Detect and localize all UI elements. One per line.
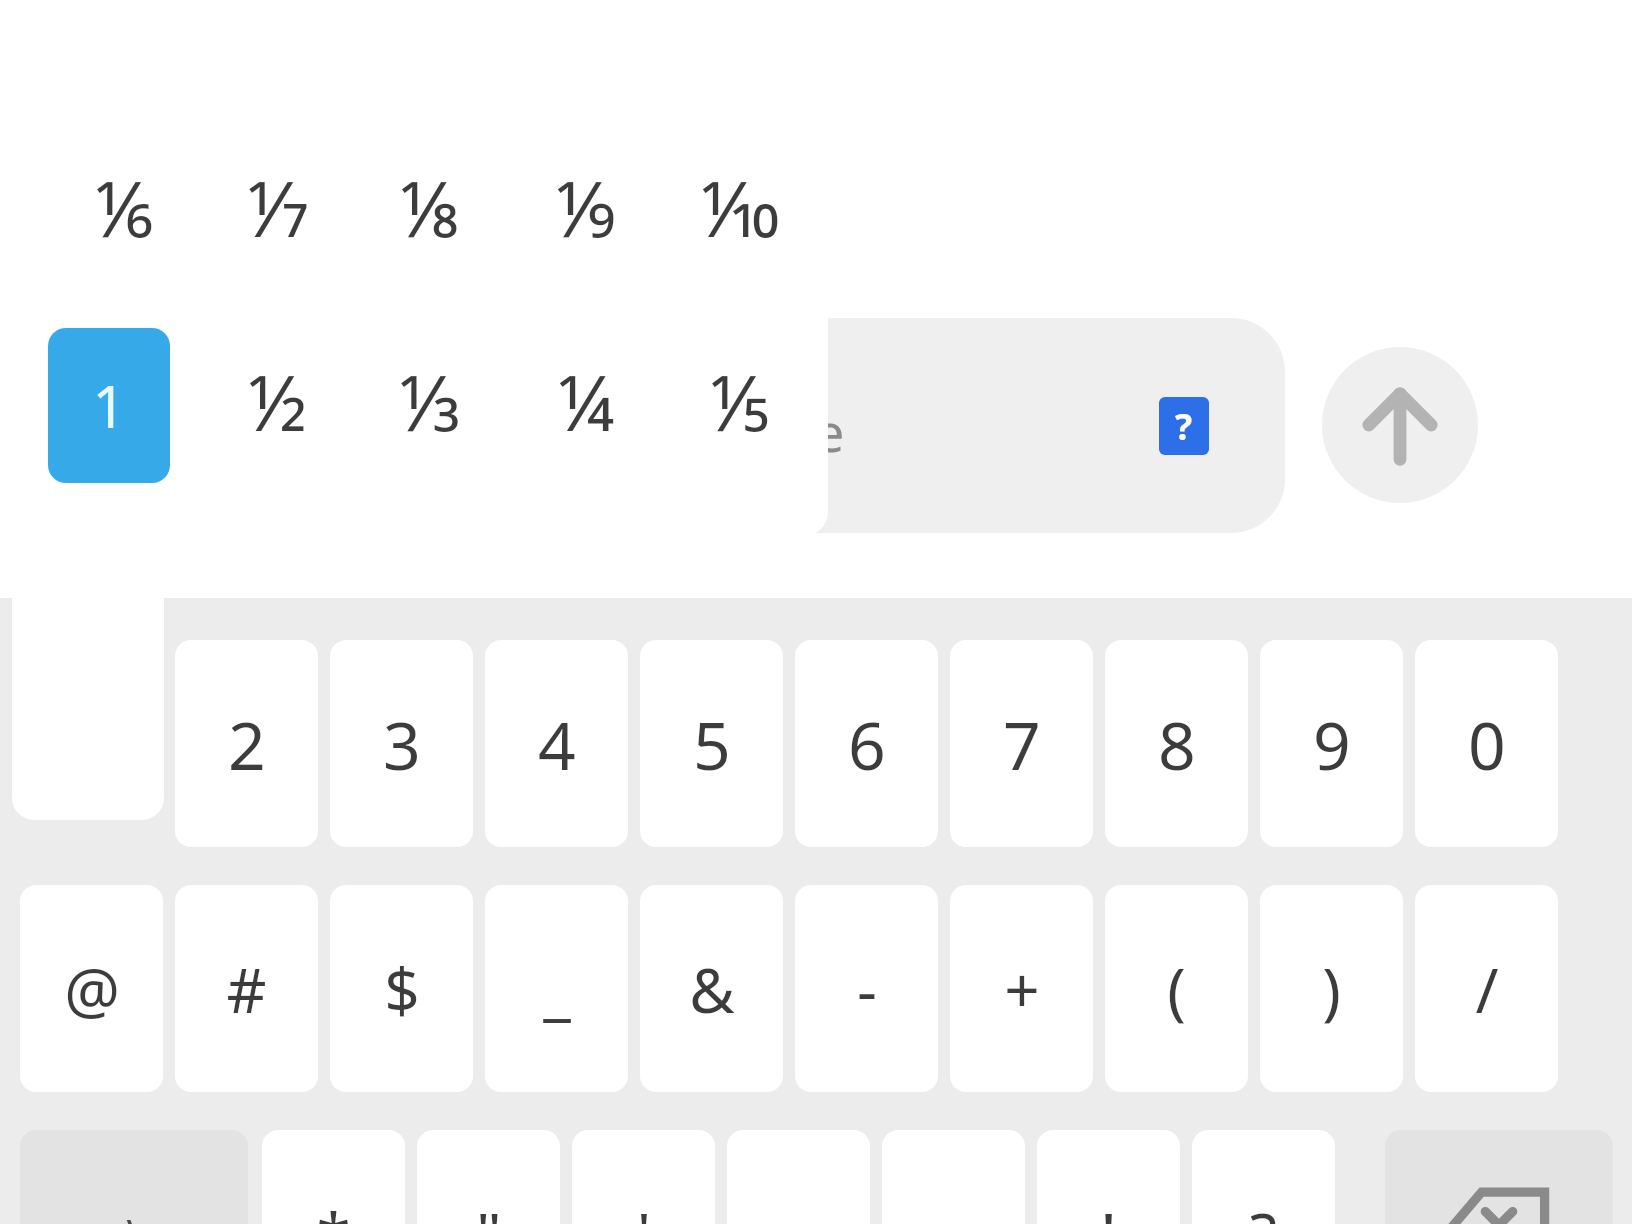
staticText: ) <box>1322 947 1341 1031</box>
button[interactable]: ) <box>1260 885 1403 1092</box>
button[interactable]: _ <box>485 885 628 1092</box>
button[interactable]: @ <box>20 885 163 1092</box>
staticText: ⅕ <box>709 350 770 454</box>
staticText: =\< <box>101 1204 168 1224</box>
staticText: 4 <box>538 699 576 789</box>
staticText: e <box>815 396 845 467</box>
staticText: ⅑ <box>555 156 615 260</box>
button[interactable]: Backspace <box>1385 1130 1613 1224</box>
button[interactable]: $ <box>330 885 473 1092</box>
button[interactable]: 1 <box>48 328 170 483</box>
button[interactable]: & <box>640 885 783 1092</box>
staticText: 2 <box>228 699 266 789</box>
staticText: # <box>226 947 267 1031</box>
button[interactable]: =\< <box>20 1130 248 1224</box>
staticText: + <box>1004 947 1040 1031</box>
button[interactable]: ⅛ <box>356 148 506 268</box>
button[interactable]: # <box>175 885 318 1092</box>
button[interactable]: ⅑ <box>510 148 660 268</box>
staticText: ' <box>637 1192 651 1224</box>
staticText: 7 <box>1003 699 1041 789</box>
button[interactable]: ½ <box>202 342 352 462</box>
button[interactable]: ⅒ <box>664 148 814 268</box>
staticText: " <box>476 1192 502 1224</box>
staticText: & <box>689 947 735 1031</box>
staticText: - <box>857 947 877 1031</box>
button[interactable]: - <box>795 885 938 1092</box>
staticText: 3 <box>383 699 421 789</box>
button[interactable]: 0 <box>1415 640 1558 847</box>
staticText: _ <box>543 947 571 1031</box>
staticText: ? <box>1250 1192 1277 1224</box>
staticText: 9 <box>1313 699 1351 789</box>
button[interactable]: ! <box>1037 1130 1180 1224</box>
button[interactable]: ⅐ <box>202 148 352 268</box>
button[interactable]: 3 <box>330 640 473 847</box>
staticText: @ <box>64 947 120 1031</box>
button[interactable]: / <box>1415 885 1558 1092</box>
button[interactable]: 7 <box>950 640 1093 847</box>
staticText: 5 <box>693 699 731 789</box>
button[interactable]: 9 <box>1260 640 1403 847</box>
button[interactable]: ¼ <box>510 342 660 462</box>
button[interactable]: * <box>262 1130 405 1224</box>
button[interactable]: ⅓ <box>356 342 506 462</box>
staticText: ⅙ <box>94 156 153 260</box>
button[interactable]: 4 <box>485 640 628 847</box>
staticText: ⅓ <box>399 350 463 454</box>
button[interactable]: e <box>460 318 1285 533</box>
staticText: ( <box>1167 947 1186 1031</box>
button[interactable]: " <box>417 1130 560 1224</box>
button[interactable]: 2 <box>175 640 318 847</box>
staticText: * <box>316 1192 351 1224</box>
button[interactable]: ⅕ <box>664 342 814 462</box>
staticText: ? <box>1175 402 1193 451</box>
staticText: $ <box>384 947 420 1031</box>
staticText: 6 <box>848 699 886 789</box>
staticText: ¼ <box>557 350 614 454</box>
staticText: ½ <box>248 350 307 454</box>
button[interactable]: 6 <box>795 640 938 847</box>
staticText: ⅒ <box>700 156 779 260</box>
staticText: 0 <box>1468 699 1506 789</box>
button[interactable]: ? <box>1192 1130 1335 1224</box>
button[interactable]: Send <box>1322 347 1478 503</box>
button[interactable]: ⅙ <box>48 148 198 268</box>
button[interactable]: 8 <box>1105 640 1248 847</box>
staticText: / <box>1475 947 1499 1031</box>
staticText: 8 <box>1158 699 1196 789</box>
staticText: ⅛ <box>399 156 463 260</box>
button[interactable]: ' <box>572 1130 715 1224</box>
button[interactable]: 5 <box>640 640 783 847</box>
button[interactable]: Help <box>1159 397 1209 455</box>
staticText: 1 <box>92 366 126 445</box>
button[interactable]: + <box>950 885 1093 1092</box>
button[interactable]: ( <box>1105 885 1248 1092</box>
staticText: ⅐ <box>246 156 309 260</box>
staticText: ! <box>1100 1192 1117 1224</box>
